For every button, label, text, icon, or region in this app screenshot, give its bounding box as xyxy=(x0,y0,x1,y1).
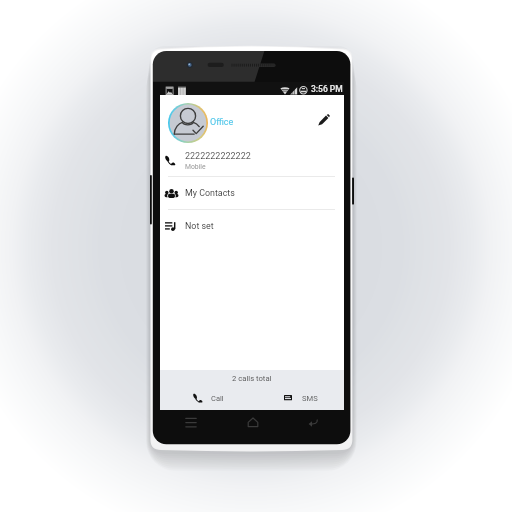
button[interactable]: Edit contact xyxy=(314,110,334,130)
staticText: Mobile xyxy=(185,163,206,171)
staticText: Call xyxy=(211,394,224,403)
staticText: My Contacts xyxy=(185,188,235,198)
button[interactable]: 2222222222222 xyxy=(160,144,344,177)
button[interactable]: SMS xyxy=(252,387,344,410)
staticText: Not set xyxy=(185,221,214,231)
staticText: 2222222222222 xyxy=(185,151,251,162)
button[interactable]: My Contacts xyxy=(160,177,344,210)
staticText: SMS xyxy=(302,394,318,403)
staticText: 3:56 PM xyxy=(311,84,343,94)
button[interactable]: Call xyxy=(160,387,252,410)
staticText: Office xyxy=(210,117,234,128)
staticText: 2 calls total xyxy=(232,374,272,383)
button[interactable]: Not set xyxy=(160,210,344,243)
button[interactable]: Contact photo xyxy=(168,103,208,143)
